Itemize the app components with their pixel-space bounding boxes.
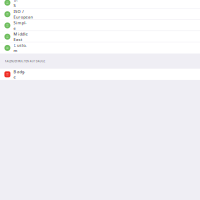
button[interactable]: Custom — [0, 42, 200, 53]
staticText: KALENDERWOCHEN AUF BADGE — [5, 59, 45, 63]
button[interactable]: Middle East — [0, 31, 200, 42]
staticText: US — [14, 0, 18, 8]
staticText: ISO / European — [14, 9, 32, 19]
button[interactable]: ISO / European — [0, 9, 200, 20]
button[interactable]: US — [0, 0, 200, 9]
button[interactable]: Badge — [0, 69, 200, 80]
staticText: Simple — [14, 20, 26, 31]
staticText: Badge — [14, 69, 25, 80]
button[interactable]: Simple — [0, 20, 200, 31]
staticText: Custom — [14, 43, 26, 53]
staticText: Middle East — [14, 31, 28, 42]
